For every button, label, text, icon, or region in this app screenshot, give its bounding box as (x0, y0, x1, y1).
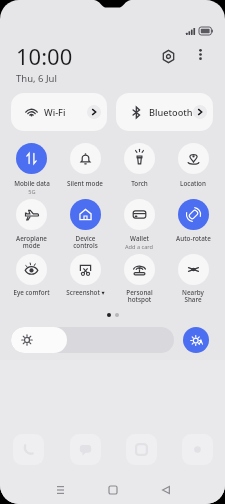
button[interactable]: Auto-rotate (166, 199, 220, 243)
staticText: Mobile data (14, 179, 50, 188)
button[interactable]: Eye comfort (5, 254, 58, 297)
staticText: Wi-Fi (44, 106, 66, 119)
button[interactable]: Home (98, 482, 128, 498)
button[interactable]: Recents (45, 482, 75, 498)
staticText: Thu, 6 Jul (16, 72, 57, 85)
button[interactable]: Auto brightness (183, 327, 209, 353)
button[interactable]: Screenshot ▾ (58, 254, 112, 297)
button[interactable]: Bluetooth (116, 93, 213, 131)
staticText: Silent mode (67, 179, 103, 188)
button[interactable]: Mobile data (5, 143, 58, 196)
staticText: Eye comfort (13, 288, 50, 297)
staticText: Auto-rotate (176, 234, 211, 243)
button[interactable]: Torch (112, 143, 166, 188)
button[interactable]: Brightness (11, 327, 174, 353)
staticText: Torch (131, 179, 148, 188)
button[interactable]: Settings (157, 45, 179, 67)
staticText: Personal hotspot (126, 288, 153, 304)
button[interactable]: Device controls (58, 199, 112, 250)
staticText: Wallet (130, 234, 149, 243)
button[interactable]: Back (151, 482, 181, 498)
staticText: Aeroplane mode (16, 234, 47, 250)
staticText: Screenshot ▾ (66, 288, 105, 297)
button[interactable]: Wallet (112, 199, 166, 251)
staticText: Bluetooth (149, 106, 193, 119)
button[interactable]: Wi-Fi (11, 93, 107, 131)
staticText: 5G (28, 188, 36, 196)
button[interactable]: Nearby Share (166, 254, 220, 304)
button[interactable]: Location (166, 143, 220, 188)
staticText: Device controls (73, 234, 98, 250)
staticText: Location (180, 179, 206, 188)
button[interactable]: Personal hotspot (112, 254, 166, 304)
button[interactable]: Aeroplane mode (5, 199, 58, 250)
staticText: 10:00 (16, 41, 73, 71)
staticText: Add a card (125, 243, 153, 251)
button[interactable]: Silent mode (58, 143, 112, 188)
button[interactable]: More options (195, 45, 206, 63)
staticText: Nearby Share (182, 288, 204, 304)
